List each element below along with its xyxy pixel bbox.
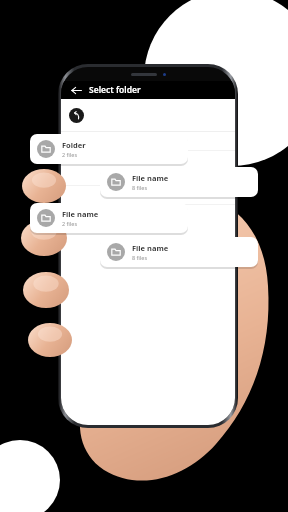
staticText: 8 files: [132, 254, 148, 261]
button[interactable]: File name: [30, 203, 188, 233]
staticText: 2 files: [62, 220, 78, 227]
staticText: File name: [132, 173, 169, 183]
staticText: 2 files: [62, 151, 78, 158]
button[interactable]: File name: [100, 237, 258, 267]
staticText: 8 files: [132, 184, 148, 191]
button[interactable]: Back: [69, 83, 83, 97]
staticText: Folder: [62, 140, 86, 150]
staticText: File name: [132, 243, 169, 253]
other: Up one level: [69, 108, 84, 123]
button[interactable]: Folder: [30, 134, 188, 164]
staticText: Select folder: [89, 84, 141, 96]
staticText: File name: [62, 209, 99, 219]
button[interactable]: File name: [100, 167, 258, 197]
button[interactable]: Up one level: [61, 99, 235, 131]
